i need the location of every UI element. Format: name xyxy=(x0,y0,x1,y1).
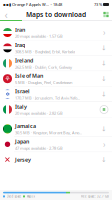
staticText: 308.5 MB · Baghdad, Erbil, Karbala xyxy=(15,49,75,54)
staticText: 47 maps available · 2.78 GB xyxy=(15,145,63,151)
staticText: Japan xyxy=(15,138,29,145)
staticText: Ireland xyxy=(15,57,33,64)
button[interactable]: Ireland xyxy=(0,56,112,71)
staticText: ↓ xyxy=(101,125,107,133)
staticText: Isle of Man xyxy=(15,72,43,79)
staticText: 262.5 MB · Dublin, Cork, Galway xyxy=(15,64,72,70)
staticText: Jamaica xyxy=(15,122,36,130)
button[interactable]: Japan xyxy=(0,137,112,152)
staticText: Iran xyxy=(15,26,25,33)
staticText: Jersey xyxy=(15,156,31,163)
staticText: ↓ xyxy=(101,59,107,67)
staticText: 170.7 MB · Jerusalem, Tel Aviv-Yafo... xyxy=(15,95,80,100)
button[interactable]: Map grid xyxy=(100,9,112,20)
staticText: 18:48 xyxy=(53,2,62,7)
staticText: Used space xyxy=(6,195,21,198)
staticText: ⚘ xyxy=(4,75,10,82)
staticText: ✡ xyxy=(5,91,9,97)
staticText: ▪▪▮ xyxy=(3,2,11,7)
button[interactable]: Jamaica xyxy=(0,121,112,136)
staticText: ↓ xyxy=(101,156,107,163)
staticText: 20 maps available · 1.57 GB xyxy=(15,34,63,39)
button[interactable]: ✡ xyxy=(0,87,112,102)
staticText: ‹ xyxy=(4,7,7,22)
staticText: Maps to download xyxy=(26,10,86,19)
button[interactable]: ⚘ xyxy=(0,71,112,86)
staticText: › xyxy=(103,139,105,150)
button[interactable]: ✕ xyxy=(0,152,112,167)
staticText: 30.5 MB · Kingston, Morant Bay, Ano... xyxy=(15,130,82,135)
staticText: 20 maps available · 2.82 GB xyxy=(15,111,63,116)
staticText: Maps x xyxy=(26,195,34,198)
button[interactable]: Italy xyxy=(0,102,112,117)
button[interactable]: Iraq xyxy=(0,40,112,55)
staticText: 5 MB · Douglas, Peel, Castletown xyxy=(15,80,72,85)
staticText: Iraq xyxy=(15,41,25,49)
staticText: Orange F Appels W... xyxy=(12,2,49,7)
button[interactable]: Back xyxy=(0,9,12,20)
staticText: 73 % xyxy=(94,2,102,7)
button[interactable]: Iran xyxy=(0,25,112,40)
staticText: › xyxy=(103,27,105,38)
staticText: Free space: 32.7 GB xyxy=(81,195,109,198)
staticText: Israel xyxy=(15,88,30,95)
staticText: ✕ xyxy=(4,155,11,164)
staticText: Italy xyxy=(15,103,27,110)
staticText: ↓ xyxy=(101,44,107,52)
staticText: ↓ xyxy=(101,75,107,82)
staticText: ◦ xyxy=(50,2,52,7)
staticText: ↓ xyxy=(101,90,107,98)
